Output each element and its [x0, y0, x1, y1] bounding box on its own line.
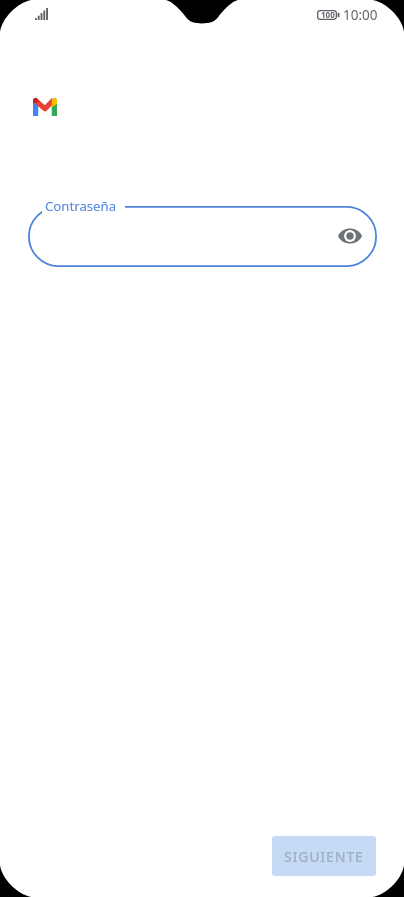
staticText: 100 [321, 9, 335, 20]
staticText: SIGUIENTE [284, 847, 364, 866]
button[interactable]: SIGUIENTE [272, 836, 376, 876]
button[interactable]: Mostrar contraseña [328, 214, 372, 258]
staticText: 10:00 [343, 6, 378, 24]
staticText: Contraseña [45, 197, 117, 215]
